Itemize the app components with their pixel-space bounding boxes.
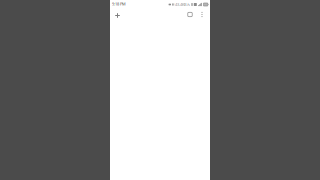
button[interactable]: Select [185, 9, 194, 20]
button[interactable]: New note [111, 9, 124, 20]
staticText: 9:18 PM [112, 1, 126, 7]
staticText: 43.4KB/s [175, 2, 190, 7]
button[interactable]: More options [197, 9, 206, 20]
